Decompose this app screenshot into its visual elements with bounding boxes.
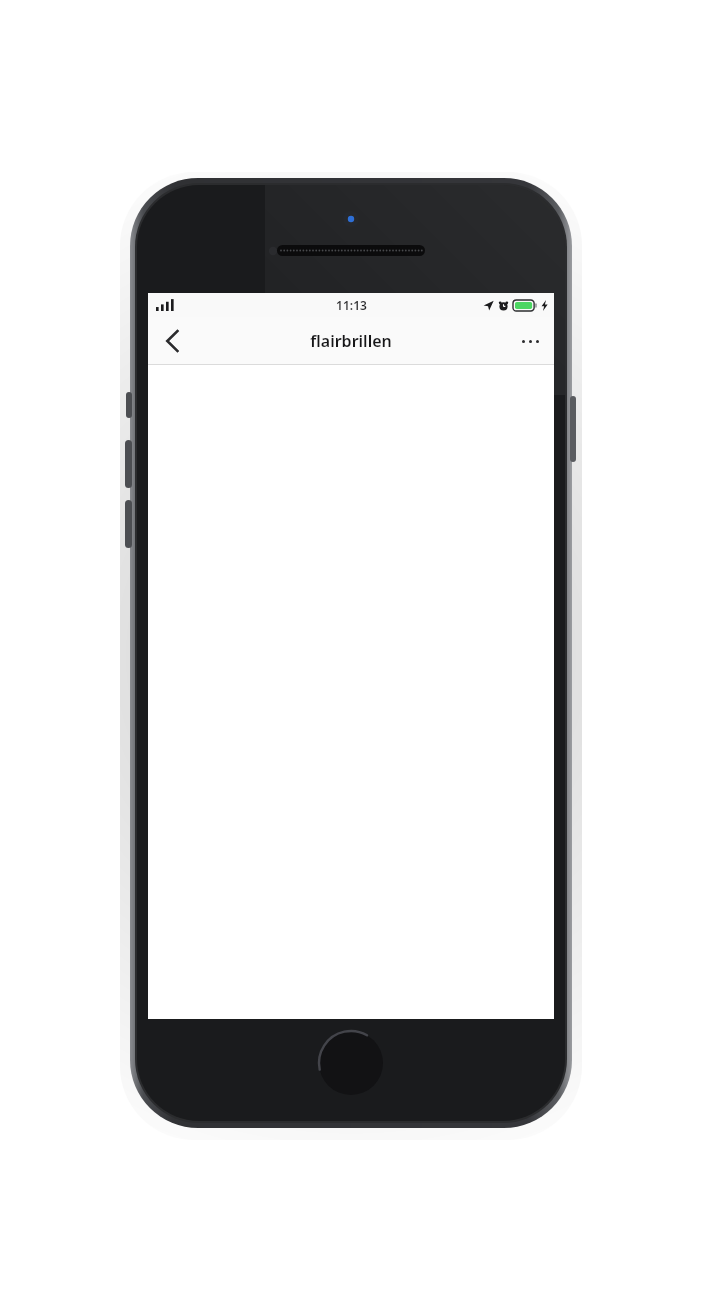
button[interactable]: Back bbox=[148, 317, 196, 365]
button[interactable]: More options bbox=[506, 317, 554, 365]
staticText: flairbrillen bbox=[310, 330, 392, 352]
staticText: 11:13 bbox=[336, 297, 367, 313]
